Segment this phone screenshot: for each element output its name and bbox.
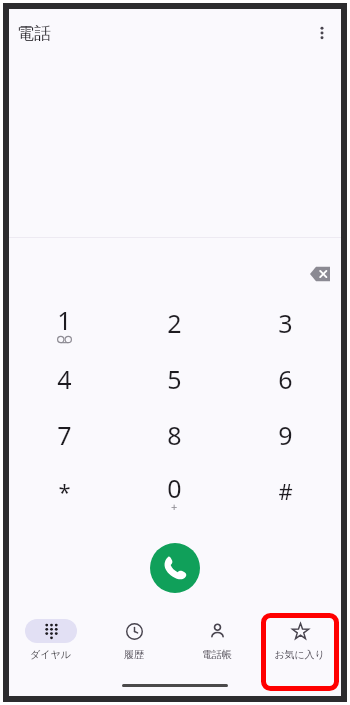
staticText: 電話帳: [202, 648, 232, 661]
staticText: お気に入り: [274, 648, 325, 661]
button[interactable]: More options: [307, 18, 337, 48]
button[interactable]: 2: [119, 295, 230, 351]
button[interactable]: *: [9, 463, 119, 519]
staticText: 1: [57, 303, 72, 337]
staticText: 3: [278, 306, 293, 340]
button[interactable]: 9: [230, 407, 341, 463]
staticText: *: [58, 476, 71, 506]
staticText: ダイヤル: [30, 648, 71, 661]
staticText: 2: [167, 306, 182, 340]
button[interactable]: Backspace: [303, 257, 337, 291]
staticText: +: [171, 499, 178, 514]
button[interactable]: 3: [230, 295, 341, 351]
button[interactable]: 0: [119, 463, 230, 519]
staticText: #: [278, 476, 293, 506]
staticText: 電話: [17, 23, 51, 44]
button[interactable]: 履歴: [92, 612, 175, 674]
staticText: 7: [57, 418, 72, 452]
button[interactable]: 7: [9, 407, 119, 463]
button[interactable]: 5: [119, 351, 230, 407]
button[interactable]: Call: [150, 543, 200, 593]
button[interactable]: 4: [9, 351, 119, 407]
staticText: 9: [278, 418, 293, 452]
button[interactable]: 6: [230, 351, 341, 407]
staticText: 0: [167, 471, 182, 505]
button[interactable]: #: [230, 463, 341, 519]
staticText: 履歴: [124, 648, 144, 661]
staticText: 4: [57, 362, 72, 396]
button[interactable]: ダイヤル: [9, 612, 92, 674]
button[interactable]: 1: [9, 295, 119, 351]
button[interactable]: 電話帳: [175, 612, 258, 674]
staticText: 8: [167, 418, 182, 452]
staticText: 5: [167, 362, 182, 396]
staticText: 6: [278, 362, 293, 396]
button[interactable]: 8: [119, 407, 230, 463]
button[interactable]: お気に入り: [258, 612, 341, 674]
